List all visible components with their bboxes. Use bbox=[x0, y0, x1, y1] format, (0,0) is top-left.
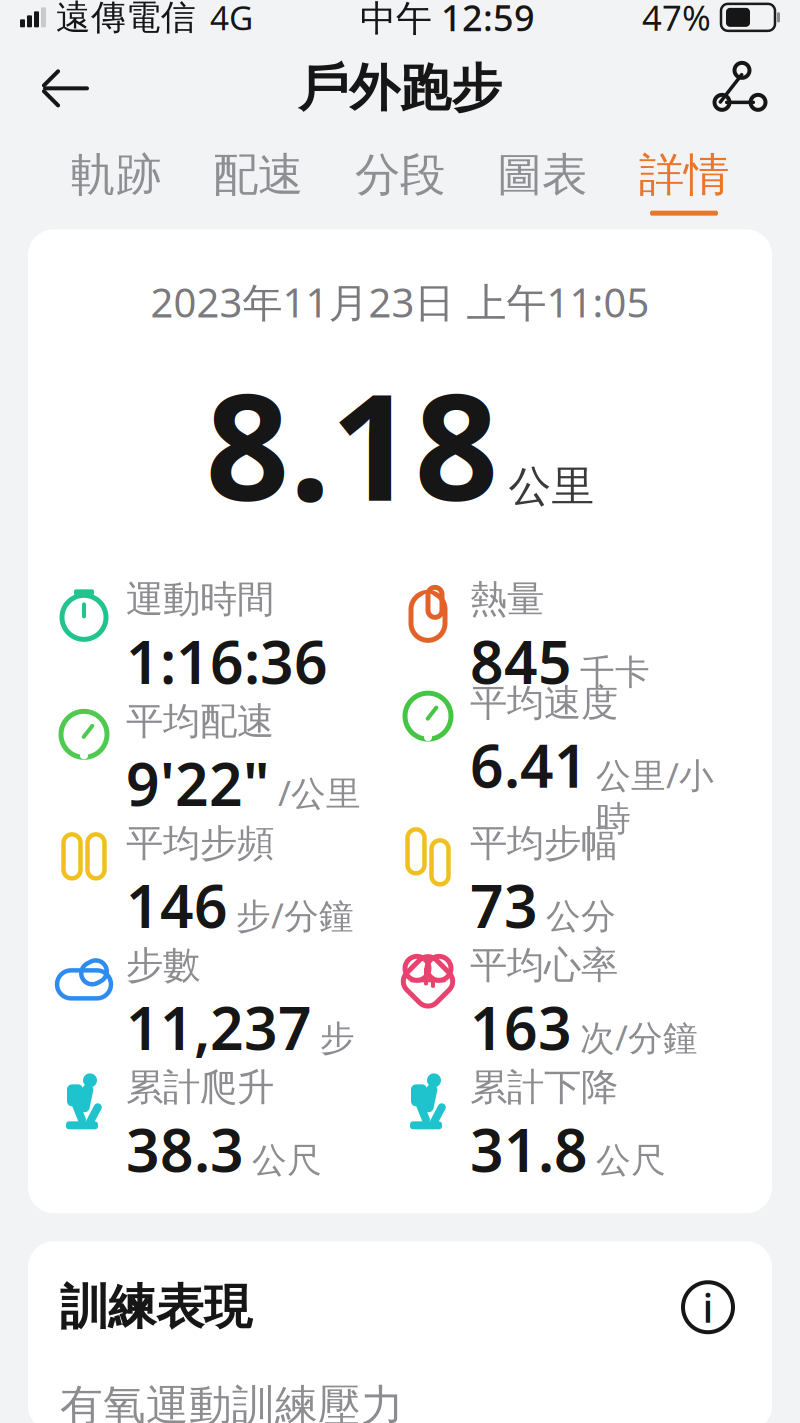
staticText: 累計下降 bbox=[470, 1064, 618, 1110]
staticText: 平均步頻 bbox=[126, 820, 274, 866]
staticText: 步/分鐘 bbox=[236, 892, 354, 938]
staticText: 千卡 bbox=[580, 651, 650, 694]
staticText: 1:16:36 bbox=[126, 622, 328, 700]
staticText: 公分 bbox=[546, 895, 616, 938]
staticText: 累計爬升 bbox=[126, 1064, 274, 1110]
button[interactable]: 分享 bbox=[696, 50, 772, 126]
staticText: 有氧運動訓練壓力 bbox=[60, 1379, 404, 1423]
staticText: 訓練表現 bbox=[60, 1278, 252, 1337]
staticText: 11,237 bbox=[126, 988, 312, 1066]
staticText: 公尺 bbox=[252, 1139, 322, 1182]
staticText: 運動時間 bbox=[126, 576, 274, 622]
staticText: 戶外跑步 bbox=[298, 57, 502, 119]
staticText: 平均配速 bbox=[126, 698, 274, 744]
button[interactable]: 詳情 bbox=[625, 141, 743, 222]
staticText: 8.18 bbox=[205, 346, 498, 541]
staticText: 38.3 bbox=[126, 1110, 244, 1188]
staticText: 146 bbox=[126, 866, 228, 944]
staticText: 31.8 bbox=[470, 1110, 588, 1188]
staticText: 73 bbox=[470, 866, 538, 944]
staticText: /公里 bbox=[278, 769, 361, 815]
staticText: 詳情 bbox=[639, 147, 729, 203]
staticText: i bbox=[702, 1281, 713, 1334]
staticText: 配速 bbox=[213, 147, 303, 203]
staticText: 163 bbox=[470, 988, 572, 1066]
staticText: 公里 bbox=[508, 460, 594, 513]
staticText: 次/分鐘 bbox=[580, 1014, 698, 1060]
button[interactable]: 圖表 bbox=[483, 141, 601, 222]
staticText: 公尺 bbox=[596, 1139, 666, 1182]
staticText: 熱量 bbox=[470, 576, 544, 622]
staticText: 9'22" bbox=[126, 744, 270, 822]
staticText: 圖表 bbox=[497, 147, 587, 203]
staticText: 47% bbox=[642, 0, 711, 40]
button[interactable]: 配速 bbox=[199, 141, 317, 222]
staticText: 遠傳電信 bbox=[56, 0, 196, 39]
button[interactable]: 軌跡 bbox=[57, 141, 175, 222]
staticText: 步數 bbox=[126, 942, 200, 988]
button[interactable]: 說明 bbox=[676, 1275, 740, 1339]
staticText: 6.41 bbox=[470, 726, 588, 804]
staticText: 845 bbox=[470, 622, 572, 700]
staticText: 平均速度 bbox=[470, 680, 618, 726]
staticText: 分段 bbox=[355, 147, 445, 203]
button[interactable]: 分段 bbox=[341, 141, 459, 222]
button[interactable]: 返回 bbox=[28, 50, 104, 126]
staticText: 公里/小時 bbox=[596, 752, 714, 840]
staticText: 中午 12:59 bbox=[360, 0, 535, 41]
staticText: 平均步幅 bbox=[470, 820, 618, 866]
staticText: 步 bbox=[320, 1017, 355, 1060]
staticText: 2023年11月23日 上午11:05 bbox=[150, 275, 649, 328]
staticText: 4G bbox=[210, 0, 253, 39]
staticText: 軌跡 bbox=[71, 147, 161, 203]
staticText: 平均心率 bbox=[470, 942, 618, 988]
